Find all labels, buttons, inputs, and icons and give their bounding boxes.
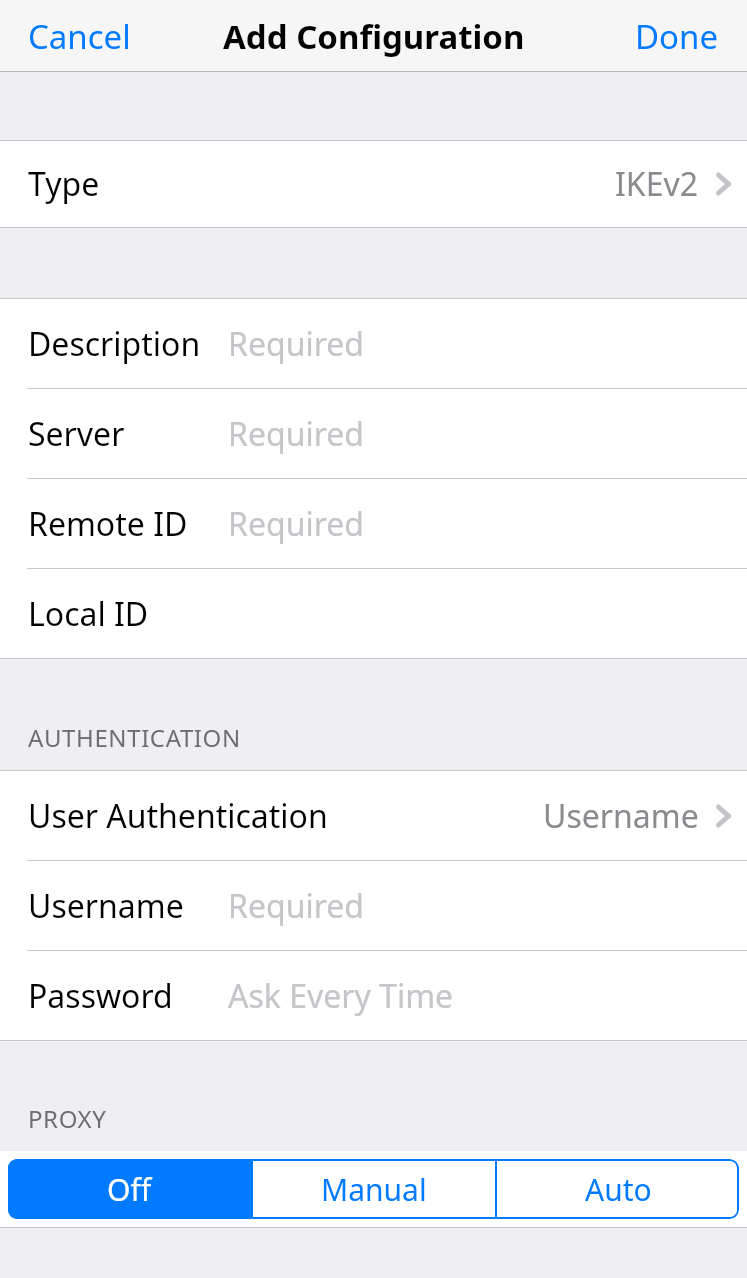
staticText: AUTHENTICATION: [28, 721, 241, 754]
staticText: Password: [28, 974, 173, 1018]
button[interactable]: Cancel: [0, 6, 153, 67]
staticText: Required: [228, 884, 364, 928]
staticText: Manual: [321, 1169, 427, 1210]
staticText: PROXY: [28, 1102, 107, 1135]
button[interactable]: User Authentication: [0, 771, 747, 860]
button[interactable]: Description: [0, 299, 747, 388]
staticText: Ask Every Time: [228, 974, 454, 1018]
button[interactable]: Done: [613, 6, 747, 67]
staticText: Description: [28, 322, 201, 366]
staticText: Required: [228, 502, 364, 546]
button[interactable]: Type: [0, 141, 747, 227]
staticText: IKEv2: [615, 162, 699, 206]
staticText: Required: [228, 322, 364, 366]
staticText: Remote ID: [28, 502, 188, 546]
staticText: Required: [228, 412, 364, 456]
staticText: Add Configuration: [223, 14, 525, 59]
staticText: Type: [28, 162, 100, 206]
button[interactable]: Auto: [497, 1159, 739, 1219]
staticText: Local ID: [28, 592, 149, 636]
button[interactable]: Server: [0, 389, 747, 478]
staticText: User Authentication: [28, 794, 328, 838]
staticText: Auto: [585, 1169, 652, 1210]
staticText: Username: [28, 884, 184, 928]
staticText: Done: [635, 14, 719, 59]
staticText: Server: [28, 412, 125, 456]
button[interactable]: Password: [0, 951, 747, 1040]
button[interactable]: Remote ID: [0, 479, 747, 568]
button[interactable]: Username: [0, 861, 747, 950]
button[interactable]: Local ID: [0, 569, 747, 658]
button[interactable]: Manual: [253, 1159, 495, 1219]
staticText: Cancel: [28, 14, 131, 59]
button[interactable]: Off: [8, 1159, 251, 1219]
staticText: Username: [543, 794, 699, 838]
staticText: Off: [107, 1169, 152, 1210]
